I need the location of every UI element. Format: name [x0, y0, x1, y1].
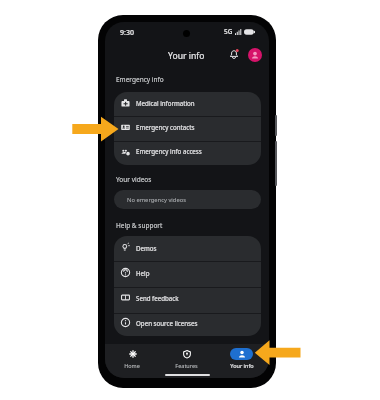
staticText: 5G	[224, 27, 233, 36]
button[interactable]: Account	[248, 48, 262, 62]
staticText: Your info	[168, 50, 205, 62]
button[interactable]: Help	[114, 261, 261, 286]
staticText: Help & support	[116, 221, 163, 230]
staticText: Help	[136, 269, 150, 277]
staticText: Your videos	[116, 175, 152, 184]
staticText: Medical information	[136, 99, 195, 107]
staticText: Emergency info	[116, 75, 164, 84]
button[interactable]: Emergency contacts	[114, 116, 261, 140]
staticText: Demos	[136, 244, 157, 252]
button[interactable]: No emergency videos	[114, 190, 261, 209]
staticText: Home	[124, 362, 140, 369]
staticText: No emergency videos	[127, 196, 186, 204]
staticText: Emergency contacts	[136, 123, 195, 131]
button[interactable]: Your info	[214, 344, 269, 370]
button[interactable]: Emergency info access	[114, 140, 261, 164]
button[interactable]: Home	[105, 344, 159, 370]
staticText: Open source licenses	[136, 319, 198, 327]
button[interactable]: Features	[159, 344, 214, 370]
staticText: Send feedback	[136, 294, 179, 302]
button[interactable]: Demos	[114, 236, 261, 261]
button[interactable]: Send feedback	[114, 286, 261, 311]
button[interactable]: Medical information	[114, 92, 261, 116]
staticText: Your info	[230, 362, 254, 369]
staticText: Emergency info access	[136, 147, 202, 155]
button[interactable]: Open source licenses	[114, 311, 261, 336]
staticText: Features	[175, 362, 198, 369]
button[interactable]: Notifications	[226, 46, 242, 62]
staticText: 9:30	[120, 28, 134, 38]
